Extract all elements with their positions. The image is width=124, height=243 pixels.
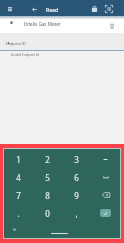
staticText: 5: [45, 172, 50, 183]
button[interactable]: [0, 33, 124, 50]
staticText: 1: [16, 154, 21, 165]
button[interactable]: Hide keyboard: [9, 224, 19, 234]
button[interactable]: [91, 186, 120, 204]
button[interactable]: [91, 168, 120, 186]
staticText: .: [17, 208, 20, 219]
button[interactable]: Menu: [4, 3, 16, 15]
staticText: 0: [45, 208, 50, 219]
staticText: 2: [45, 154, 50, 165]
button[interactable]: ,: [62, 204, 91, 222]
button[interactable]: Back: [28, 3, 40, 15]
staticText: 6: [74, 172, 79, 183]
button[interactable]: Device: [106, 20, 118, 32]
button[interactable]: Scan barcode: [103, 3, 115, 15]
button[interactable]: 9: [62, 186, 91, 204]
staticText: 7: [16, 190, 21, 201]
button[interactable]: [91, 150, 120, 168]
button[interactable]: 2: [33, 150, 62, 168]
button[interactable]: 7: [4, 186, 33, 204]
staticText: 9: [74, 190, 79, 201]
staticText: 4: [16, 172, 21, 183]
button[interactable]: 3: [62, 150, 91, 168]
staticText: Invalid Endpoint Id: [11, 53, 40, 57]
staticText: Endpoint ID: [6, 41, 26, 46]
button[interactable]: 4: [4, 168, 33, 186]
staticText: 3: [74, 154, 79, 165]
button[interactable]: 1: [4, 150, 33, 168]
button[interactable]: 6: [62, 168, 91, 186]
button[interactable]: Confirm: [100, 209, 111, 217]
staticText: ,: [75, 208, 78, 219]
staticText: Read: [46, 7, 58, 14]
button[interactable]: 8: [33, 186, 62, 204]
button[interactable]: .: [4, 204, 33, 222]
button[interactable]: Confirm: [91, 204, 120, 222]
button[interactable]: Lock: [88, 2, 100, 14]
staticText: 8: [45, 190, 50, 201]
staticText: Intelis Gas Meter: [24, 21, 61, 27]
button[interactable]: 0: [33, 204, 62, 222]
button[interactable]: 5: [33, 168, 62, 186]
